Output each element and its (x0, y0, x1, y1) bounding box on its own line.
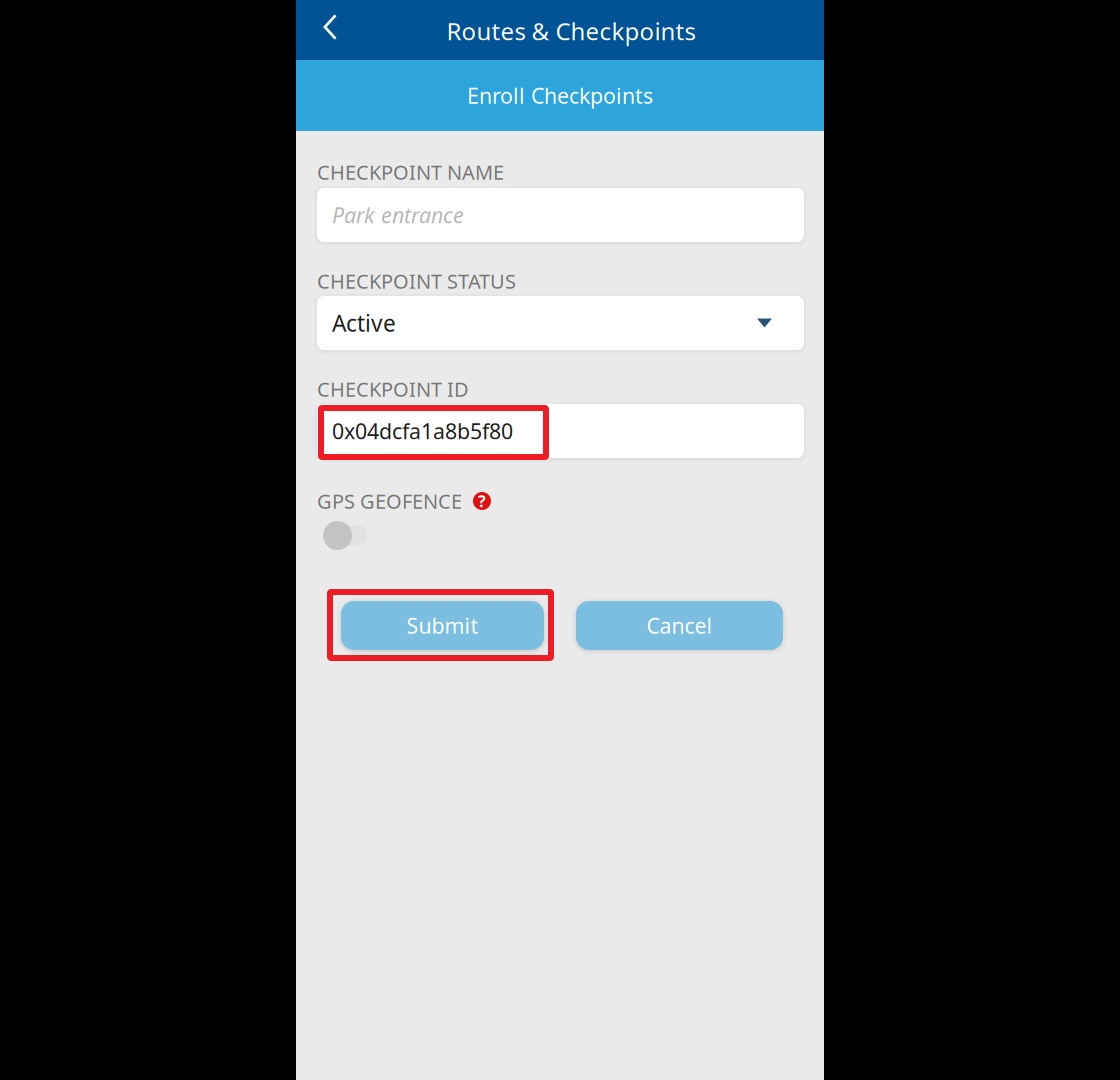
staticText: Park entrance (332, 201, 464, 229)
button[interactable]: 0x04dcfa1a8b5f80 (317, 404, 804, 458)
button[interactable]: Submit (341, 601, 544, 650)
button[interactable]: Cancel (576, 601, 783, 650)
staticText: Cancel (646, 611, 712, 640)
button[interactable]: Help (473, 492, 491, 510)
staticText: CHECKPOINT ID (317, 376, 469, 402)
staticText: 0x04dcfa1a8b5f80 (332, 417, 513, 445)
staticText: ? (478, 490, 486, 512)
staticText: CHECKPOINT STATUS (317, 268, 516, 294)
button[interactable]: Active (317, 296, 804, 350)
button[interactable]: GPS Geofence (317, 521, 373, 550)
staticText: CHECKPOINT NAME (317, 159, 504, 185)
staticText: Active (332, 308, 396, 338)
staticText: Enroll Checkpoints (467, 81, 653, 110)
button[interactable]: Back (296, 0, 352, 60)
staticText: Submit (406, 611, 478, 640)
staticText: Routes & Checkpoints (446, 15, 695, 47)
button[interactable]: Park entrance (317, 188, 804, 242)
staticText: GPS GEOFENCE (317, 488, 462, 514)
